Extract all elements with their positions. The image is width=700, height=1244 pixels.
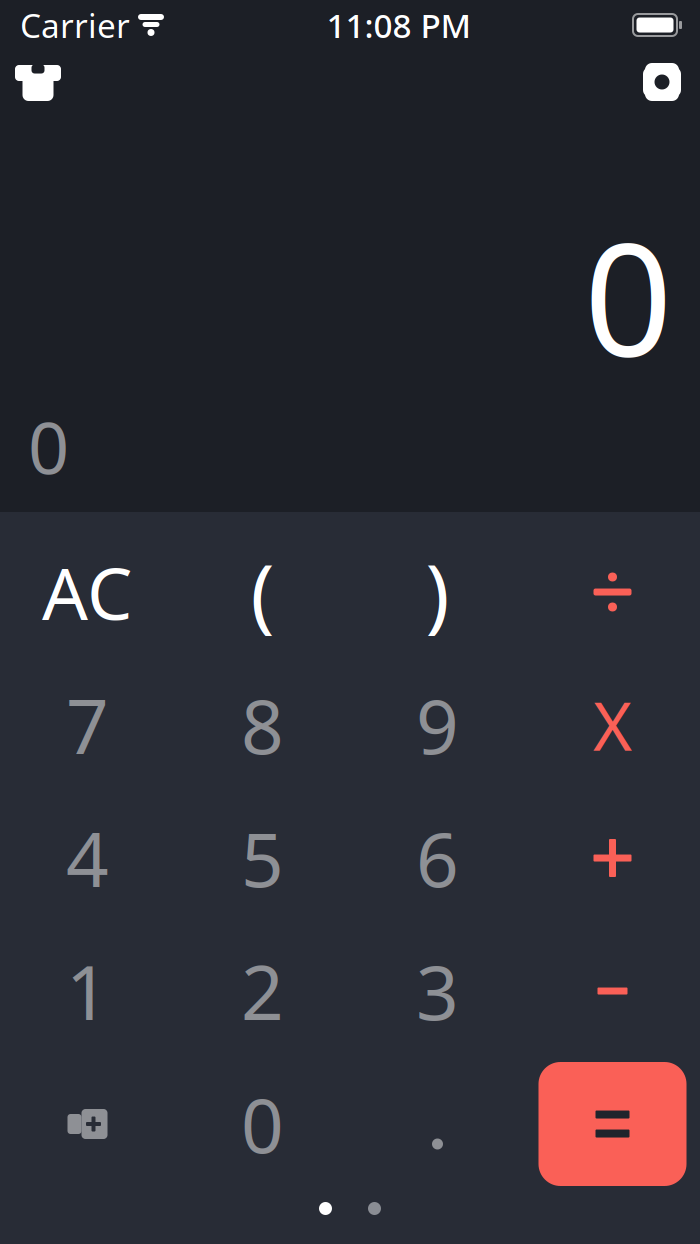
button[interactable]: AC <box>0 525 175 658</box>
button[interactable]: Themes <box>0 50 76 114</box>
staticText: 6 <box>416 808 459 908</box>
button[interactable]: Divide <box>525 525 700 658</box>
button[interactable]: 5 <box>175 791 350 924</box>
button[interactable]: 3 <box>350 924 525 1057</box>
staticText: 11:08 PM <box>326 3 471 47</box>
staticText: AC <box>42 544 133 640</box>
staticText: 0 <box>28 398 69 494</box>
staticText: X <box>593 681 632 769</box>
button[interactable]: 0 <box>175 1057 350 1190</box>
staticText: 2 <box>241 941 284 1041</box>
button[interactable]: Equals <box>525 1057 700 1190</box>
button[interactable]: 1 <box>0 924 175 1057</box>
staticText: 0 <box>584 193 672 398</box>
staticText: 8 <box>241 675 284 775</box>
staticText: 5 <box>241 808 284 908</box>
button[interactable]: 7 <box>0 658 175 791</box>
button[interactable]: Settings <box>624 50 700 114</box>
staticText: 7 <box>66 675 109 775</box>
button[interactable]: ) <box>350 525 525 658</box>
staticText: Carrier <box>20 3 130 47</box>
button[interactable]: 9 <box>350 658 525 791</box>
button[interactable]: 4 <box>0 791 175 924</box>
button[interactable]: 2 <box>175 924 350 1057</box>
staticText: 4 <box>66 808 109 908</box>
staticText: ) <box>425 539 449 645</box>
button[interactable]: Backspace <box>0 1057 175 1190</box>
staticText: ( <box>250 539 274 645</box>
button[interactable]: X <box>525 658 700 791</box>
button[interactable]: Minus <box>525 924 700 1057</box>
button[interactable]: Plus <box>525 791 700 924</box>
button[interactable]: 8 <box>175 658 350 791</box>
staticText: 1 <box>66 941 109 1041</box>
staticText: 3 <box>416 941 459 1041</box>
button[interactable]: Decimal point <box>350 1057 525 1190</box>
button[interactable]: ( <box>175 525 350 658</box>
staticText: 0 <box>241 1074 284 1174</box>
button[interactable]: 6 <box>350 791 525 924</box>
staticText: 9 <box>416 675 459 775</box>
